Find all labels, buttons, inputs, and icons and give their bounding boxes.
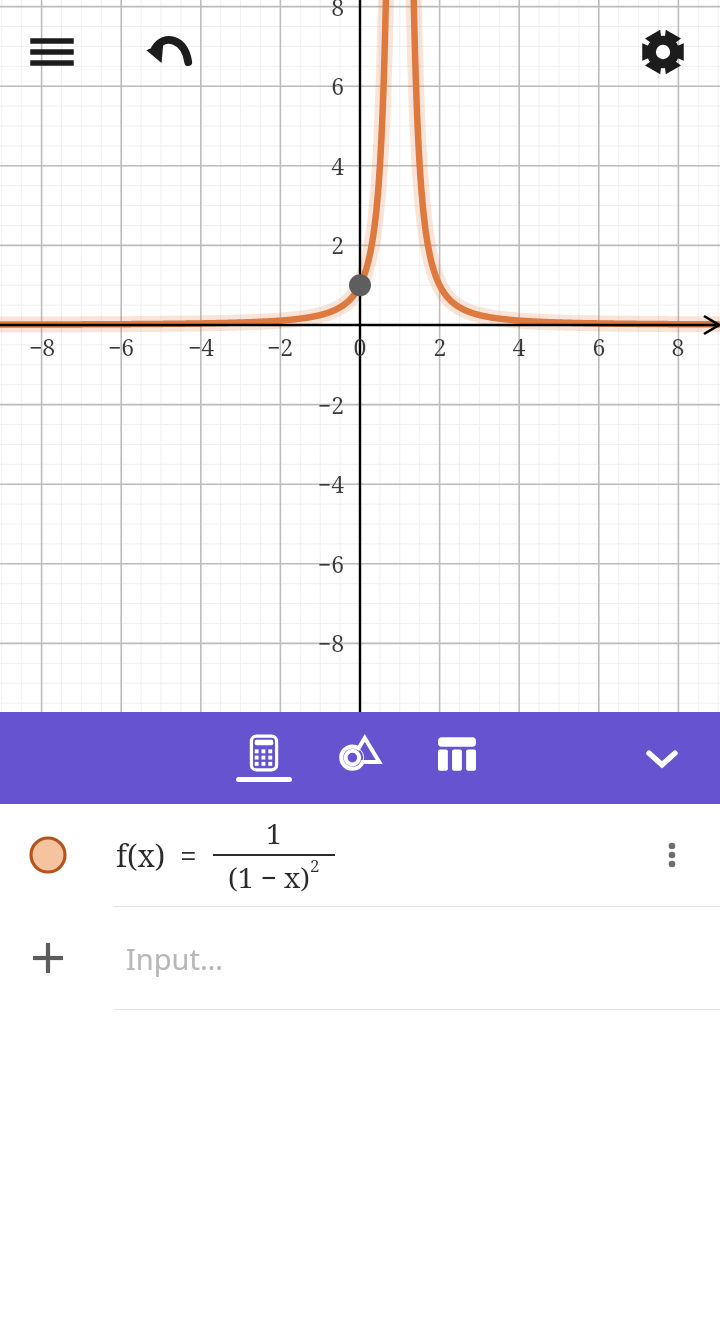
staticText: f(x) bbox=[116, 835, 166, 876]
staticText: −2 bbox=[256, 331, 304, 362]
staticText: 8 bbox=[654, 331, 702, 362]
staticText: 4 bbox=[288, 150, 344, 181]
staticText: −6 bbox=[288, 548, 344, 579]
button[interactable]: Menu bbox=[24, 24, 80, 80]
staticText: −4 bbox=[177, 331, 225, 362]
staticText: 2 bbox=[310, 854, 320, 877]
button[interactable]: Add input bbox=[0, 907, 720, 1009]
staticText: (1 − x) bbox=[228, 858, 310, 896]
staticText: Input… bbox=[126, 939, 223, 978]
staticText: −8 bbox=[18, 331, 66, 362]
button[interactable]: Undo bbox=[138, 22, 198, 82]
staticText: 4 bbox=[495, 331, 543, 362]
staticText: 8 bbox=[288, 0, 344, 22]
staticText: −4 bbox=[288, 468, 344, 499]
button[interactable]: Table bbox=[421, 712, 493, 804]
button[interactable]: Collapse bbox=[634, 730, 690, 786]
staticText: 0 bbox=[336, 331, 384, 362]
staticText: 1 bbox=[266, 814, 282, 852]
button[interactable]: f(x) bbox=[0, 804, 720, 906]
button[interactable]: Geometry bbox=[324, 712, 396, 804]
staticText: 6 bbox=[288, 70, 344, 101]
staticText: 6 bbox=[575, 331, 623, 362]
button[interactable]: Settings bbox=[633, 22, 693, 82]
staticText: 2 bbox=[416, 331, 464, 362]
button[interactable]: More options bbox=[648, 831, 696, 879]
staticText: 2 bbox=[288, 229, 344, 260]
staticText: −6 bbox=[97, 331, 145, 362]
staticText: −8 bbox=[288, 627, 344, 658]
button[interactable]: Calculator bbox=[228, 712, 300, 804]
staticText: = bbox=[180, 835, 197, 876]
button[interactable]: Add input bbox=[24, 934, 72, 982]
staticText: −2 bbox=[288, 389, 344, 420]
